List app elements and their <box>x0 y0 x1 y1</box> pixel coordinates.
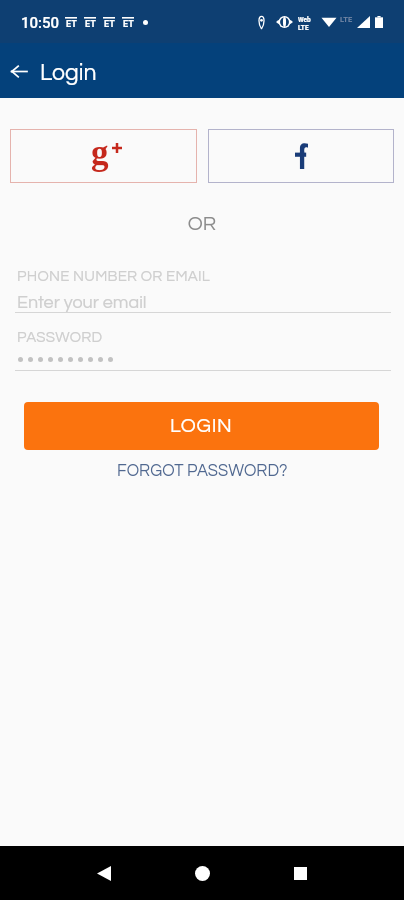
staticText: g <box>91 133 109 172</box>
button[interactable]: Sign in with Google Plus <box>10 129 197 183</box>
staticText: 10:50 <box>21 14 60 32</box>
staticText: ET <box>85 19 96 30</box>
staticText: ET <box>66 19 77 30</box>
staticText: ET <box>104 19 115 30</box>
staticText: ET <box>123 19 134 30</box>
staticText: Enter your email <box>17 293 147 312</box>
staticText: LTE <box>340 15 353 24</box>
staticText: OR <box>0 214 404 235</box>
staticText: LOGIN <box>170 416 233 437</box>
staticText: PASSWORD <box>17 330 103 345</box>
button[interactable]: Back <box>80 849 128 897</box>
button[interactable]: FORGOT PASSWORD? <box>107 455 298 486</box>
staticText: Web <box>298 16 311 24</box>
button[interactable]: Back <box>4 56 34 86</box>
button[interactable]: Recent apps <box>276 849 324 897</box>
button[interactable]: LOGIN <box>24 402 379 450</box>
staticText: LTE <box>298 24 309 32</box>
button[interactable]: Sign in with Facebook <box>208 129 394 183</box>
staticText: Login <box>40 61 97 85</box>
button[interactable]: Home <box>178 849 226 897</box>
staticText: PHONE NUMBER OR EMAIL <box>17 269 211 284</box>
